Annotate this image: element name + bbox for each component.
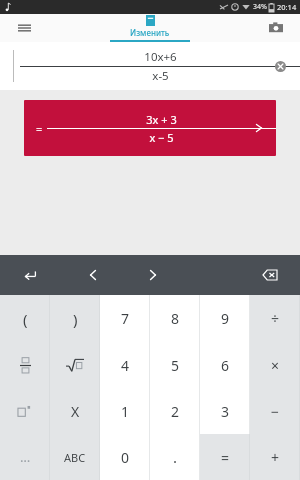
- button[interactable]: =: [24, 100, 276, 156]
- staticText: 3x + 3: [146, 112, 177, 127]
- button[interactable]: 0: [100, 434, 150, 480]
- button[interactable]: 9: [200, 295, 250, 342]
- button[interactable]: Menu: [0, 14, 48, 42]
- button[interactable]: Previous: [80, 262, 106, 288]
- staticText: 10x+6: [144, 49, 177, 65]
- staticText: 5: [171, 356, 180, 375]
- staticText: −: [271, 402, 280, 421]
- button[interactable]: .: [150, 434, 200, 480]
- button[interactable]: (: [0, 295, 50, 342]
- staticText: ×: [271, 356, 280, 375]
- button[interactable]: [50, 342, 100, 388]
- staticText: 8: [171, 309, 180, 328]
- button[interactable]: ×: [250, 342, 300, 388]
- button[interactable]: 7: [100, 295, 150, 342]
- button[interactable]: 6: [200, 342, 250, 388]
- staticText: 1: [121, 402, 130, 421]
- button[interactable]: X: [50, 388, 100, 434]
- button[interactable]: Backspace: [257, 262, 283, 288]
- button[interactable]: 1: [100, 388, 150, 434]
- staticText: =: [221, 448, 230, 467]
- button[interactable]: …: [0, 434, 50, 480]
- staticText: 7: [121, 309, 130, 328]
- staticText: 34%: [253, 2, 267, 12]
- button[interactable]: ÷: [250, 295, 300, 342]
- button[interactable]: Camera: [252, 14, 300, 42]
- button[interactable]: Clear: [268, 54, 292, 78]
- staticText: 6: [221, 356, 230, 375]
- button[interactable]: Enter: [17, 262, 43, 288]
- staticText: +: [271, 448, 280, 467]
- staticText: ): [73, 309, 78, 329]
- staticText: 3: [221, 402, 230, 421]
- staticText: ÷: [271, 309, 280, 328]
- button[interactable]: 2: [150, 388, 200, 434]
- button[interactable]: ): [50, 295, 100, 342]
- staticText: .: [173, 447, 178, 467]
- staticText: =: [36, 121, 43, 136]
- staticText: X: [71, 402, 80, 421]
- button[interactable]: [0, 342, 50, 388]
- button[interactable]: 3: [200, 388, 250, 434]
- staticText: 2: [171, 402, 180, 421]
- button[interactable]: 4: [100, 342, 150, 388]
- staticText: (: [23, 309, 28, 329]
- button[interactable]: −: [250, 388, 300, 434]
- staticText: x − 5: [149, 130, 174, 145]
- button[interactable]: 5: [150, 342, 200, 388]
- button[interactable]: 8: [150, 295, 200, 342]
- staticText: …: [20, 448, 31, 466]
- button[interactable]: =: [200, 434, 250, 480]
- button[interactable]: [0, 388, 50, 434]
- staticText: 0: [121, 448, 130, 467]
- staticText: x-5: [152, 68, 169, 84]
- staticText: 20:14: [277, 2, 297, 12]
- staticText: 9: [221, 309, 230, 328]
- staticText: 4: [121, 356, 130, 375]
- staticText: Изменить: [130, 27, 170, 38]
- button[interactable]: +: [250, 434, 300, 480]
- button[interactable]: Next: [140, 262, 166, 288]
- button[interactable]: Изменить: [107, 14, 193, 42]
- button[interactable]: ABC: [50, 434, 100, 480]
- staticText: ABC: [64, 450, 86, 465]
